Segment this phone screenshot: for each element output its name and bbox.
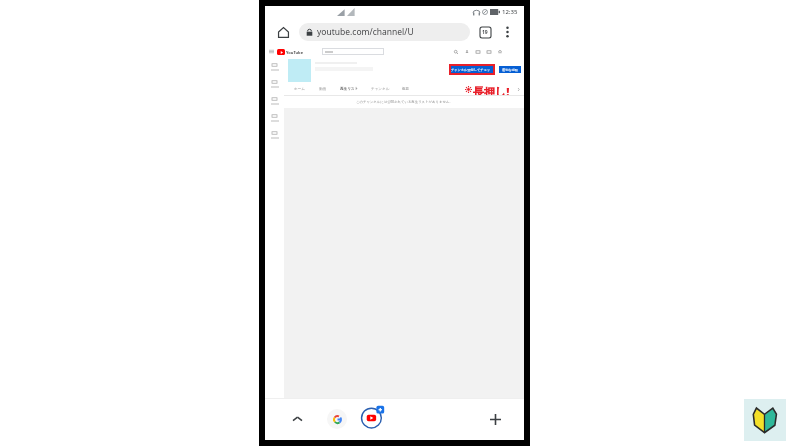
button[interactable] <box>265 76 284 93</box>
staticText: このチャンネルには公開されている再生リストがありません。 <box>356 100 453 104</box>
button[interactable]: youtube.com/channel/U <box>299 23 470 41</box>
button[interactable]: 概要 <box>402 87 410 92</box>
button[interactable]: 再生リスト <box>340 87 359 92</box>
button[interactable]: 通知を受取 <box>499 66 521 73</box>
button[interactable]: Home <box>273 22 293 42</box>
button[interactable]: New tab <box>484 408 506 430</box>
button[interactable] <box>322 48 384 55</box>
staticText: チャンネル登録してチェック <box>451 68 493 72</box>
button[interactable]: Expand <box>287 409 307 429</box>
staticText: youtube.com/channel/U <box>317 26 414 38</box>
button[interactable] <box>265 93 284 110</box>
button[interactable] <box>265 59 284 76</box>
staticText: 長押し! <box>473 84 510 95</box>
button[interactable]: YouTube app <box>360 404 386 430</box>
button[interactable]: Google Search <box>327 409 347 429</box>
button[interactable]: ホーム <box>294 87 305 92</box>
button[interactable]: チャンネル <box>371 87 390 92</box>
button[interactable]: More options <box>498 23 516 41</box>
staticText: YouTube <box>286 50 304 55</box>
button[interactable]: チャンネル登録 <box>451 66 493 73</box>
staticText: 19 <box>482 29 488 36</box>
button[interactable]: 動画 <box>319 87 327 92</box>
staticText: 12:35 <box>502 8 518 16</box>
button[interactable]: Tabs <box>476 23 494 41</box>
button[interactable] <box>265 110 284 127</box>
button[interactable] <box>265 127 284 144</box>
staticText: 通知を受取 <box>502 68 519 72</box>
